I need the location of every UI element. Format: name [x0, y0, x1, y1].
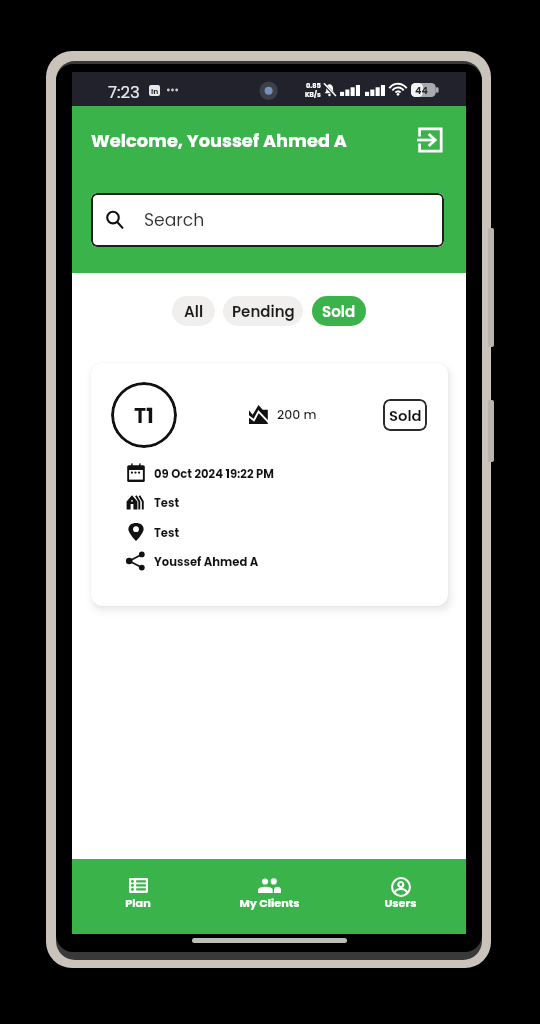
staticText: 7:23 — [108, 81, 140, 104]
staticText: Youssef Ahmed A — [154, 554, 259, 570]
staticText: Test — [154, 525, 180, 541]
button[interactable]: My Clients — [204, 859, 335, 934]
staticText: Sold — [322, 301, 356, 322]
staticText: T1 — [134, 401, 154, 430]
staticText: 09 Oct 2024 19:22 PM — [154, 466, 274, 482]
button[interactable]: Users — [335, 859, 466, 934]
staticText: My Clients — [239, 895, 300, 911]
button[interactable]: Pending — [223, 296, 303, 326]
staticText: All — [184, 301, 204, 322]
staticText: 44 — [415, 84, 428, 97]
staticText: Sold — [389, 405, 422, 426]
staticText: Pending — [232, 301, 295, 322]
button[interactable]: Logout — [415, 125, 445, 155]
staticText: Test — [154, 495, 180, 511]
staticText: Welcome, Youssef Ahmed A — [91, 128, 347, 153]
staticText: KB/s — [305, 90, 321, 99]
staticText: Search — [144, 208, 205, 232]
button[interactable]: Sold — [312, 296, 366, 326]
staticText: in — [151, 86, 159, 96]
staticText: 200 m — [277, 406, 317, 423]
button[interactable]: Sold — [383, 399, 427, 431]
button[interactable]: Search — [91, 193, 444, 247]
button[interactable]: T1 — [91, 363, 448, 606]
button[interactable]: All — [172, 296, 215, 326]
button[interactable]: Plan — [72, 859, 204, 934]
staticText: 0.85 — [306, 81, 321, 90]
staticText: Plan — [125, 895, 151, 911]
staticText: Users — [384, 895, 417, 911]
